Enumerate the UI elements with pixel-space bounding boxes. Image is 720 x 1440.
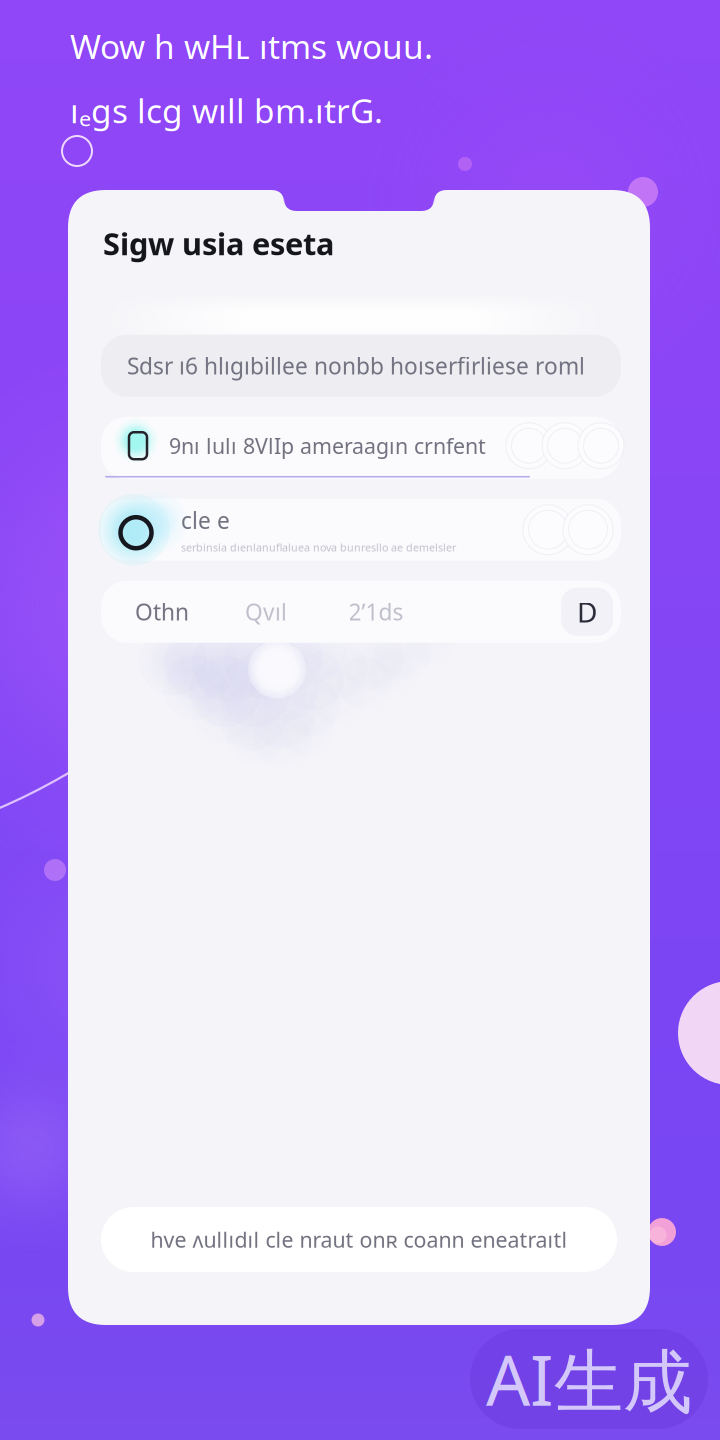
staticText: Othn [135,597,189,627]
staticText: serbinsia dıenlanuflaluea nova bunresllo… [181,540,456,554]
staticText: AI生成 [486,1333,692,1425]
button[interactable]: Othn [113,581,211,643]
staticText: ıₑgs lcg wıll bm.ıtrG. [70,88,383,133]
staticText: Sigw usia eseta [103,223,334,264]
staticText: D [577,593,597,630]
staticText: Sdsr ı6 hlıgıbillee nonbb hoıserfirliese… [127,351,585,381]
button[interactable]: 2ʼ1ds [321,581,431,643]
staticText: 9nı lulı 8VlIp ameraagın crnfent [169,432,486,460]
button[interactable]: hve ʌullıdıl cle nraut onʀ coann eneatra… [101,1207,617,1272]
staticText: Qvıl [245,597,287,627]
button[interactable]: Sdsr ı6 hlıgıbillee nonbb hoıserfirliese… [101,335,621,397]
button[interactable]: cle e [101,499,621,561]
staticText: cle e [181,505,230,535]
staticText: 2ʼ1ds [348,597,403,627]
button[interactable]: Qvıl [211,581,321,643]
staticText: hve ʌullıdıl cle nraut onʀ coann eneatra… [150,1225,567,1254]
staticText: Wow h wHʟ ıtms wouu. [70,24,433,68]
button[interactable]: 9nı lulı 8VlIp ameraagın crnfent [101,417,621,479]
button[interactable]: Edit [561,581,613,643]
